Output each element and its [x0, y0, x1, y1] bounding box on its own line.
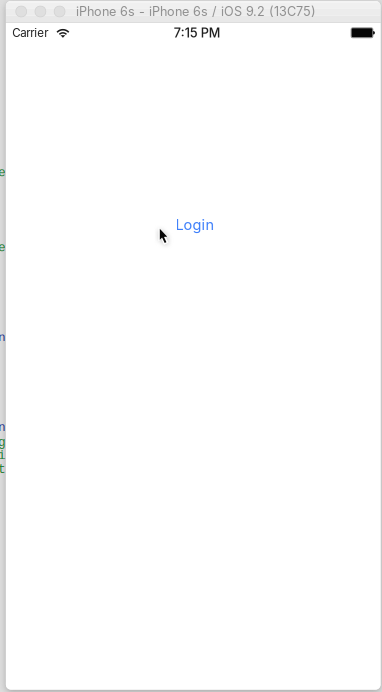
button[interactable]: Login: [175, 216, 214, 234]
button[interactable]: Window control: [16, 6, 27, 17]
staticText: Carrier: [12, 26, 48, 40]
staticText: i: [0, 448, 6, 463]
button[interactable]: Window control: [35, 6, 46, 17]
staticText: 7:15 PM: [174, 25, 221, 40]
staticText: t: [0, 462, 6, 477]
staticText: n: [0, 421, 6, 435]
staticText: e: [0, 165, 6, 180]
staticText: e: [0, 240, 6, 255]
staticText: n: [0, 331, 6, 345]
staticText: iPhone 6s - iPhone 6s / iOS 9.2 (13C75): [76, 4, 316, 19]
staticText: Login: [175, 216, 214, 234]
staticText: g: [0, 435, 6, 450]
button[interactable]: Window control: [54, 6, 65, 17]
